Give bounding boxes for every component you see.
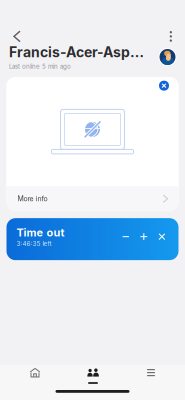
staticText: Time out [16,226,64,239]
button[interactable]: Home [6,366,64,386]
button[interactable]: More options [161,25,185,48]
button[interactable]: Increase time [135,225,153,248]
staticText: More info [17,194,47,203]
button[interactable]: Back [0,25,29,48]
staticText: Last online 5 min ago [9,63,71,70]
button[interactable]: Menu [122,366,180,386]
button[interactable]: Dismiss [154,76,174,96]
button[interactable]: Decrease time [117,225,135,248]
button[interactable]: Dismiss time out [153,226,171,248]
staticText: 3:46:35 left [16,240,51,247]
button[interactable]: More info [6,186,178,211]
button[interactable]: Family [64,366,122,386]
staticText: Francis-Acer-Asp… [9,44,144,61]
